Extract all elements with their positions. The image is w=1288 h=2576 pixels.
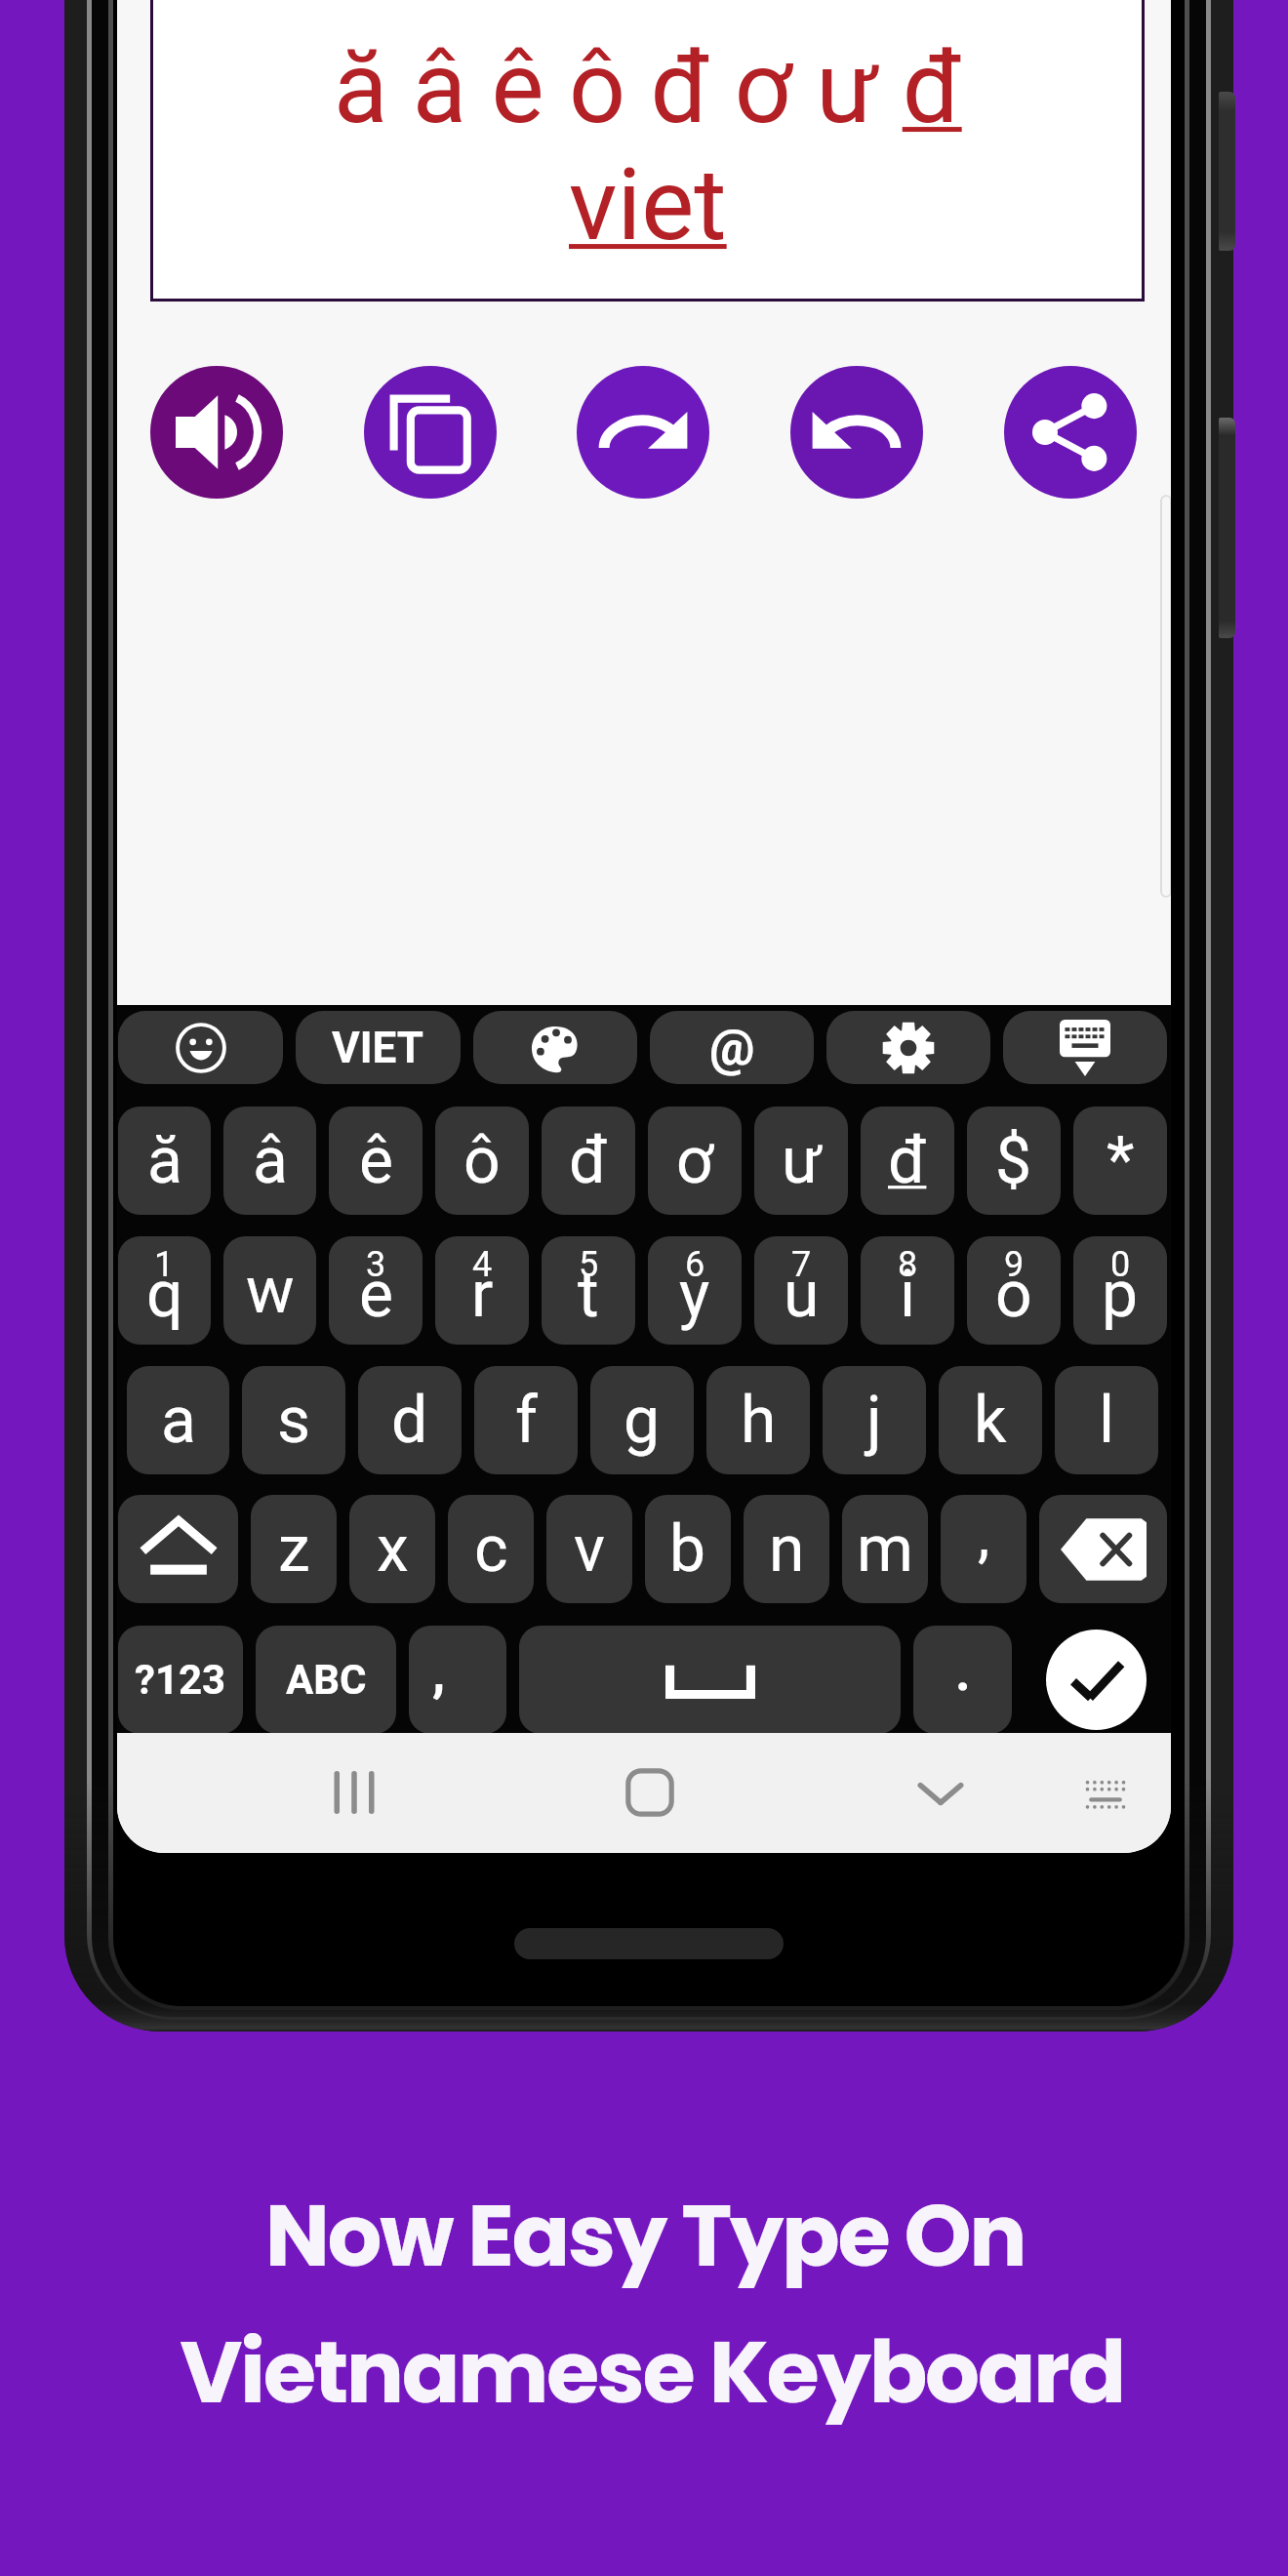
staticText: r (471, 1257, 494, 1332)
button[interactable]: 7 (754, 1236, 848, 1345)
button[interactable]: n (744, 1495, 829, 1603)
staticText: h (741, 1383, 777, 1458)
staticText: * (1107, 1123, 1135, 1198)
staticText: s (277, 1383, 311, 1458)
staticText: ă (147, 1123, 182, 1198)
staticText: w (246, 1253, 295, 1328)
staticText: 3 (366, 1244, 386, 1285)
staticText: x (377, 1511, 409, 1587)
button[interactable]: Undo (790, 366, 923, 499)
button[interactable]: Comma (941, 1495, 1026, 1603)
button[interactable]: s (242, 1366, 345, 1474)
button[interactable]: $ (967, 1107, 1061, 1215)
button[interactable]: x (349, 1495, 435, 1603)
button[interactable]: ô (435, 1107, 529, 1215)
button[interactable]: m (842, 1495, 928, 1603)
staticText: $ (995, 1123, 1032, 1198)
button[interactable]: Switch keyboard (1069, 1756, 1142, 1829)
button[interactable]: Back (905, 1756, 977, 1829)
button[interactable]: l (1055, 1366, 1158, 1474)
button[interactable]: Redo (577, 366, 709, 499)
button[interactable]: Hide keyboard (1003, 1011, 1167, 1084)
button[interactable]: 3 (329, 1236, 423, 1345)
button[interactable]: 9 (967, 1236, 1061, 1345)
staticText: k (974, 1383, 1007, 1458)
button[interactable]: a (127, 1366, 229, 1474)
button[interactable]: w (223, 1236, 316, 1345)
button[interactable]: VIET (296, 1011, 461, 1084)
staticText: ?123 (135, 1656, 226, 1704)
button[interactable]: z (251, 1495, 337, 1603)
button[interactable]: Share (1004, 366, 1137, 499)
staticText: v (574, 1511, 605, 1587)
button[interactable]: @ (650, 1011, 814, 1084)
button[interactable]: h (706, 1366, 810, 1474)
button[interactable]: 8 (861, 1236, 954, 1345)
button[interactable]: 4 (435, 1236, 529, 1345)
staticText: m (857, 1511, 913, 1587)
button[interactable]: â (223, 1107, 316, 1215)
staticText: 7 (791, 1244, 812, 1285)
button[interactable]: k (939, 1366, 1042, 1474)
staticText: 5 (579, 1244, 599, 1285)
staticText: 1 (154, 1244, 175, 1285)
button[interactable]: c (448, 1495, 534, 1603)
button[interactable]: 0 (1073, 1236, 1167, 1345)
button[interactable]: 6 (648, 1236, 742, 1345)
button[interactable]: Speak (150, 366, 283, 499)
button[interactable]: 5 (542, 1236, 635, 1345)
button[interactable]: Space (519, 1626, 901, 1734)
button[interactable]: Enter (1046, 1630, 1147, 1730)
button[interactable]: Symbols (118, 1626, 243, 1734)
button[interactable]: Shift (118, 1495, 238, 1603)
button[interactable]: Comma (409, 1626, 506, 1734)
button[interactable]: Copy (364, 366, 497, 499)
staticText: y (679, 1257, 710, 1332)
button[interactable]: f (474, 1366, 578, 1474)
staticText: ơ (676, 1123, 713, 1198)
button[interactable]: g (590, 1366, 694, 1474)
button[interactable]: v (546, 1495, 632, 1603)
button[interactable]: b (645, 1495, 731, 1603)
button[interactable]: 1 (118, 1236, 211, 1345)
staticText: o (995, 1257, 1032, 1332)
button[interactable]: đ (861, 1107, 954, 1215)
staticText: 9 (1004, 1244, 1025, 1285)
button[interactable]: Settings (826, 1011, 990, 1084)
staticText: q (146, 1257, 183, 1332)
button[interactable]: đ (542, 1107, 635, 1215)
staticText: , (978, 1500, 990, 1571)
button[interactable]: j (823, 1366, 926, 1474)
button[interactable]: Emoji (118, 1011, 283, 1084)
button[interactable]: ê (329, 1107, 423, 1215)
staticText: t (578, 1257, 599, 1332)
staticText: f (515, 1383, 538, 1458)
button[interactable]: Theme (473, 1011, 637, 1084)
staticText: ư (782, 1123, 822, 1198)
staticText: p (1102, 1257, 1139, 1332)
staticText: c (474, 1511, 508, 1587)
staticText: 6 (685, 1244, 705, 1285)
button[interactable]: ơ (648, 1107, 742, 1215)
button[interactable]: * (1073, 1107, 1167, 1215)
staticText: , (432, 1641, 446, 1703)
button[interactable]: ư (754, 1107, 848, 1215)
button[interactable]: ă (118, 1107, 211, 1215)
staticText: 8 (898, 1244, 918, 1285)
button[interactable]: Period (913, 1626, 1012, 1734)
button[interactable]: Recents (318, 1756, 390, 1829)
staticText: u (784, 1257, 820, 1332)
staticText: ô (463, 1123, 501, 1198)
staticText: i (900, 1257, 916, 1332)
button[interactable]: Home (614, 1756, 686, 1829)
staticText: @ (709, 1018, 755, 1077)
button[interactable]: ABC (256, 1626, 396, 1734)
staticText: 4 (472, 1244, 493, 1285)
staticText: đ (569, 1123, 608, 1198)
button[interactable]: Backspace (1039, 1495, 1167, 1603)
button[interactable]: d (358, 1366, 462, 1474)
staticText: Vietnamese Keyboard (8, 2313, 1288, 2433)
staticText: e (359, 1257, 393, 1332)
staticText: 0 (1110, 1244, 1131, 1285)
staticText: l (1099, 1383, 1115, 1458)
